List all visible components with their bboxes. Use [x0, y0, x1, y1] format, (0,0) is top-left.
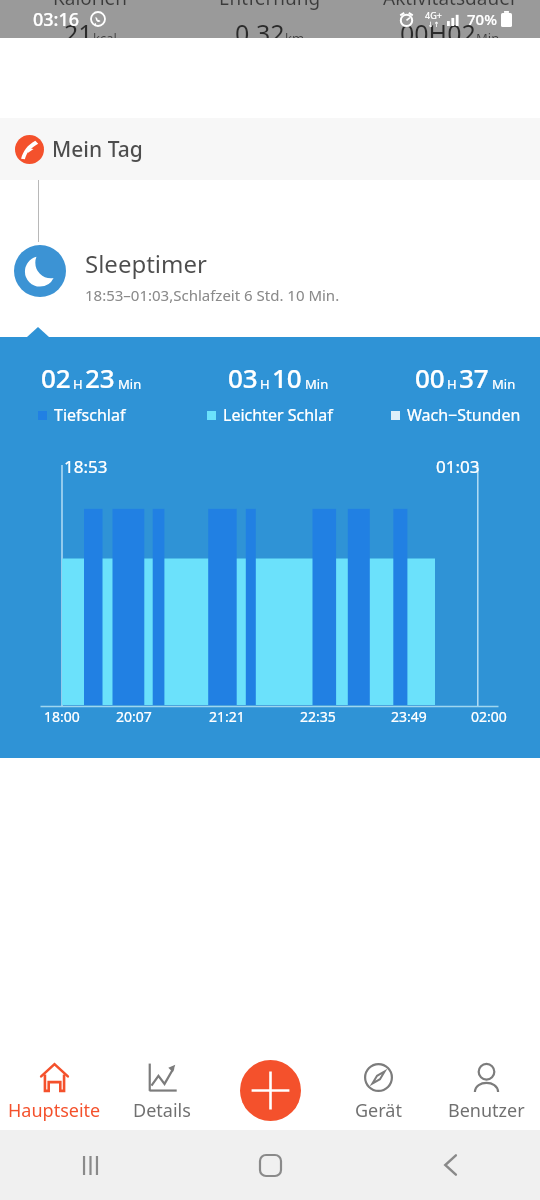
staticText: 70%	[467, 9, 497, 29]
staticText: H	[73, 375, 83, 393]
button[interactable]: Recents	[68, 1143, 112, 1187]
staticText: kcal	[93, 29, 117, 38]
button[interactable]: Sleeptimer	[0, 242, 540, 327]
button[interactable]: Hinzufügen	[240, 1060, 301, 1121]
staticText: Details	[133, 1098, 191, 1123]
staticText: 23	[85, 360, 115, 395]
staticText: 03	[228, 360, 258, 395]
staticText: H	[447, 375, 457, 393]
staticText: 22:35	[300, 707, 336, 726]
staticText: 18:53–01:03,Schlafzeit 6 Std. 10 Min.	[85, 285, 340, 305]
staticText: ↓↑	[428, 21, 440, 29]
staticText: Leichter Schlaf	[223, 404, 333, 426]
button[interactable]: Hauptseite	[0, 1040, 108, 1123]
staticText: 37	[459, 360, 489, 395]
staticText: km	[285, 29, 305, 38]
staticText: 00H02	[400, 16, 476, 38]
staticText: 10	[272, 360, 302, 395]
staticText: Tiefschlaf	[54, 404, 126, 426]
staticText: Sleeptimer	[85, 247, 207, 280]
staticText: 21	[64, 16, 93, 38]
staticText: 23:49	[391, 707, 427, 726]
staticText: 03:16	[33, 7, 80, 32]
staticText: 20:07	[116, 707, 152, 726]
staticText: Mein Tag	[52, 135, 143, 164]
staticText: 00	[415, 360, 445, 395]
staticText: Benutzer	[448, 1098, 525, 1123]
staticText: 02:00	[471, 707, 507, 726]
staticText: 01:03	[436, 455, 480, 478]
staticText: Min	[492, 375, 516, 393]
staticText: Kalorien	[53, 0, 128, 11]
staticText: 21:21	[209, 707, 245, 726]
staticText: 18:00	[44, 707, 80, 726]
staticText: 18:53	[64, 455, 108, 478]
staticText: Gerät	[355, 1098, 402, 1123]
staticText: Entfernung	[219, 0, 321, 11]
button[interactable]: Benutzer	[432, 1040, 540, 1123]
button[interactable]: Details	[108, 1040, 216, 1123]
staticText: H	[260, 375, 270, 393]
staticText: Hauptseite	[8, 1098, 101, 1123]
button[interactable]: Gerät	[324, 1040, 432, 1123]
staticText: 0.32	[235, 16, 285, 38]
button[interactable]: Home	[248, 1143, 292, 1187]
staticText: Aktivitätsdauer	[383, 0, 518, 11]
staticText: Min	[118, 375, 142, 393]
button[interactable]: Back	[428, 1143, 472, 1187]
staticText: 02	[41, 360, 71, 395]
staticText: Wach−Stunden	[407, 404, 521, 426]
staticText: Min	[476, 29, 500, 38]
button[interactable]: Mein Tag	[0, 118, 540, 180]
staticText: 4G+	[425, 9, 442, 21]
staticText: Min	[305, 375, 329, 393]
